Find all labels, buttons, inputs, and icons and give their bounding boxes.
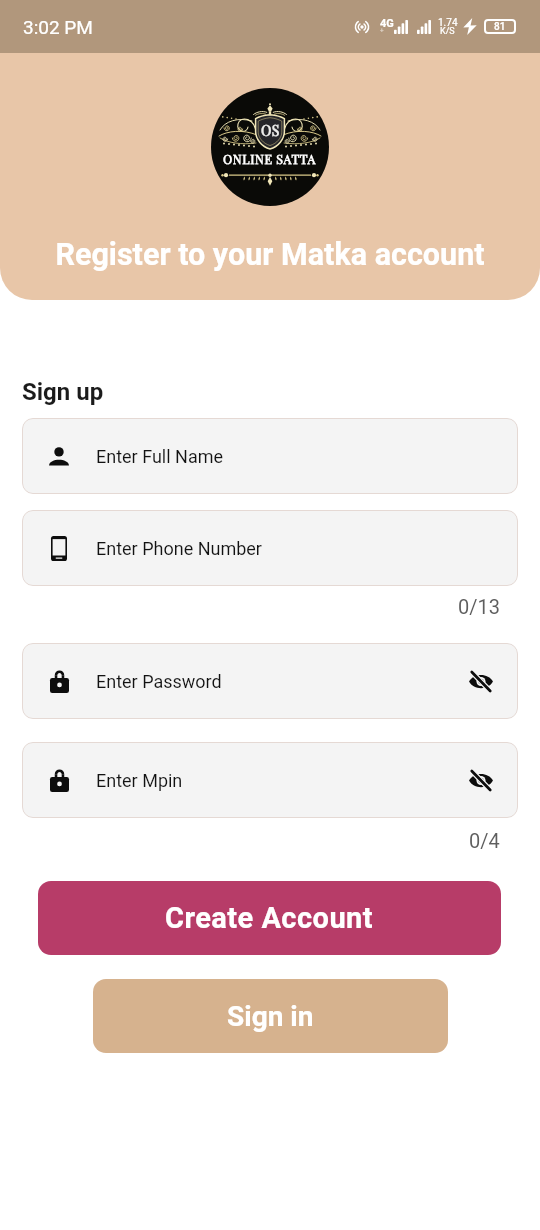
staticText: Enter Mpin <box>96 770 183 791</box>
staticText: 0/13 <box>458 595 500 618</box>
staticText: OS <box>261 121 280 140</box>
staticText: 0/4 <box>469 829 500 852</box>
staticText: Register to your Matka account <box>55 237 485 273</box>
staticText: Enter Full Name <box>96 446 224 467</box>
staticText: K/S <box>440 26 455 37</box>
button[interactable]: Enter Full Name <box>22 418 518 494</box>
button[interactable]: Enter Password <box>22 643 518 719</box>
staticText: Enter Phone Number <box>96 538 262 559</box>
button[interactable]: Enter Phone Number <box>22 510 518 586</box>
staticText: ONLINE SATTA <box>223 150 317 167</box>
button[interactable]: Create Account <box>38 881 501 955</box>
staticText: 81 <box>494 21 506 33</box>
staticText: Sign up <box>22 378 104 406</box>
button[interactable]: Show password <box>462 761 500 799</box>
staticText: Create Account <box>165 901 374 935</box>
button[interactable]: Enter Mpin <box>22 742 518 818</box>
staticText: 3:02 PM <box>23 16 93 38</box>
staticText: 4G <box>380 17 394 30</box>
button[interactable]: Show password <box>462 662 500 700</box>
button[interactable]: Sign in <box>93 979 448 1053</box>
staticText: Enter Password <box>96 671 222 692</box>
staticText: Sign in <box>227 1000 314 1033</box>
staticText: 1.74 <box>438 17 458 29</box>
staticText: ⁺ <box>380 27 384 38</box>
